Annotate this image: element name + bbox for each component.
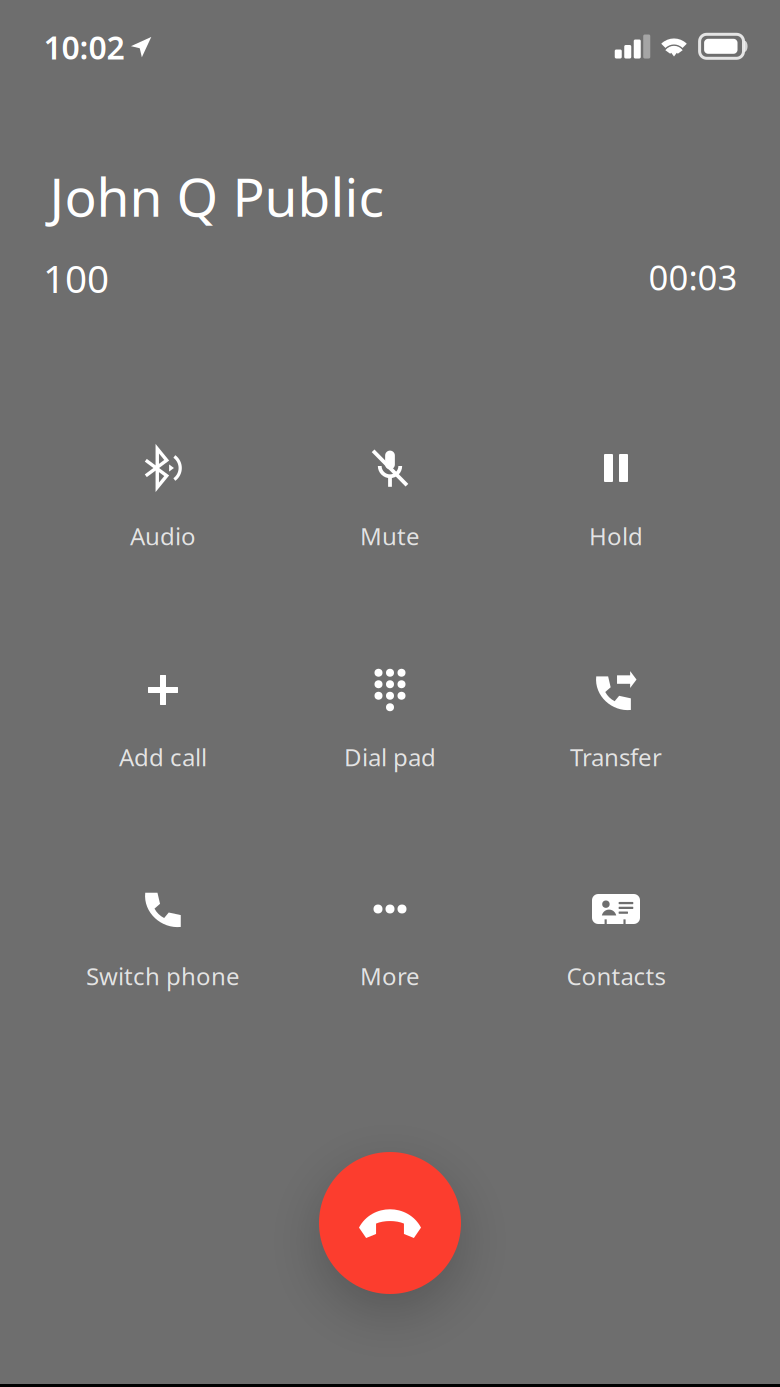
staticText: More xyxy=(360,960,420,992)
button[interactable]: Hold xyxy=(516,428,716,576)
staticText: Switch phone xyxy=(86,960,240,992)
button[interactable]: Switch phone xyxy=(63,869,263,1016)
staticText: Add call xyxy=(119,741,207,773)
staticText: Transfer xyxy=(570,741,662,773)
button[interactable]: More xyxy=(290,869,490,1016)
staticText: Contacts xyxy=(566,960,665,992)
staticText: Mute xyxy=(360,520,420,552)
button[interactable]: Mute xyxy=(290,428,490,576)
staticText: John Q Public xyxy=(49,161,384,231)
button[interactable]: End call xyxy=(319,1152,461,1294)
staticText: Hold xyxy=(589,520,643,552)
staticText: 10:02 xyxy=(43,26,124,68)
button[interactable]: Add call xyxy=(63,650,263,797)
button[interactable]: Audio xyxy=(63,428,263,576)
button[interactable]: Transfer xyxy=(516,650,716,797)
button[interactable]: Contacts xyxy=(516,869,716,1016)
button[interactable]: Dial pad xyxy=(290,650,490,797)
staticText: Audio xyxy=(130,520,196,552)
staticText: 00:03 xyxy=(648,254,737,300)
staticText: 100 xyxy=(43,252,109,304)
staticText: Dial pad xyxy=(344,741,436,773)
